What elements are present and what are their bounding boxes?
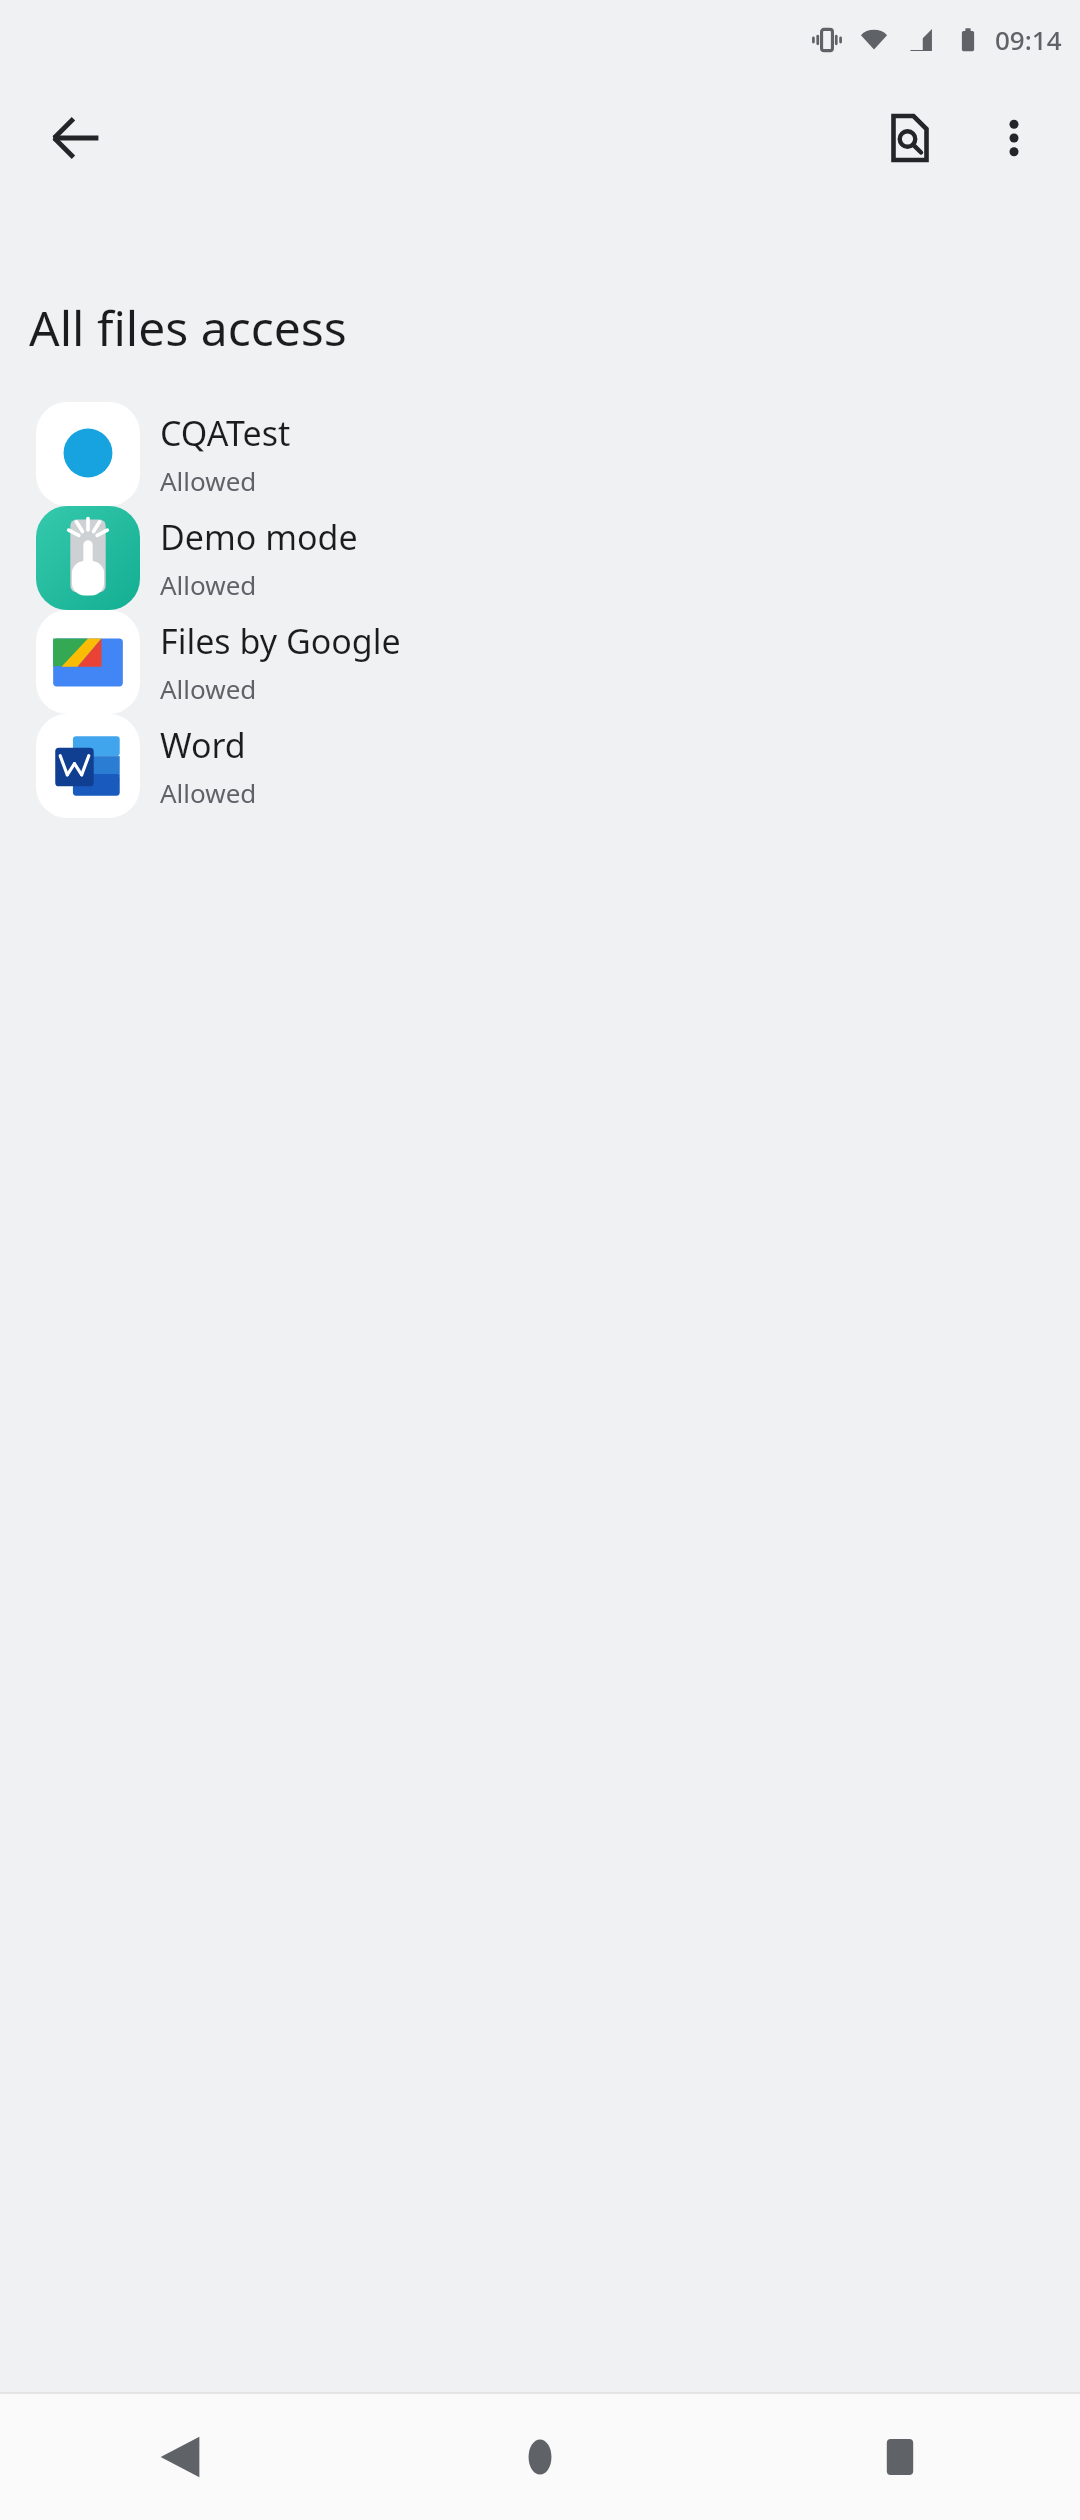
staticText: Word [160, 722, 246, 768]
staticText: Allowed [160, 463, 257, 498]
button[interactable]: Demo mode [0, 506, 1080, 610]
button[interactable]: Back [22, 85, 128, 191]
button[interactable]: Files by Google [0, 610, 1080, 714]
button[interactable]: CQATest [0, 402, 1080, 506]
staticText: All files access [29, 295, 347, 360]
button[interactable]: Recent apps [720, 2394, 1080, 2520]
button[interactable]: Back [0, 2394, 360, 2520]
button[interactable]: More options [962, 86, 1066, 190]
staticText: CQATest [160, 410, 291, 456]
staticText: 09:14 [995, 22, 1062, 57]
button[interactable]: Search in document [858, 86, 962, 190]
staticText: Demo mode [160, 514, 358, 560]
staticText: Allowed [160, 567, 257, 602]
staticText: Allowed [160, 671, 257, 706]
button[interactable]: Word [0, 714, 1080, 818]
staticText: Files by Google [160, 618, 401, 664]
staticText: Allowed [160, 775, 257, 810]
button[interactable]: Home [360, 2394, 720, 2520]
